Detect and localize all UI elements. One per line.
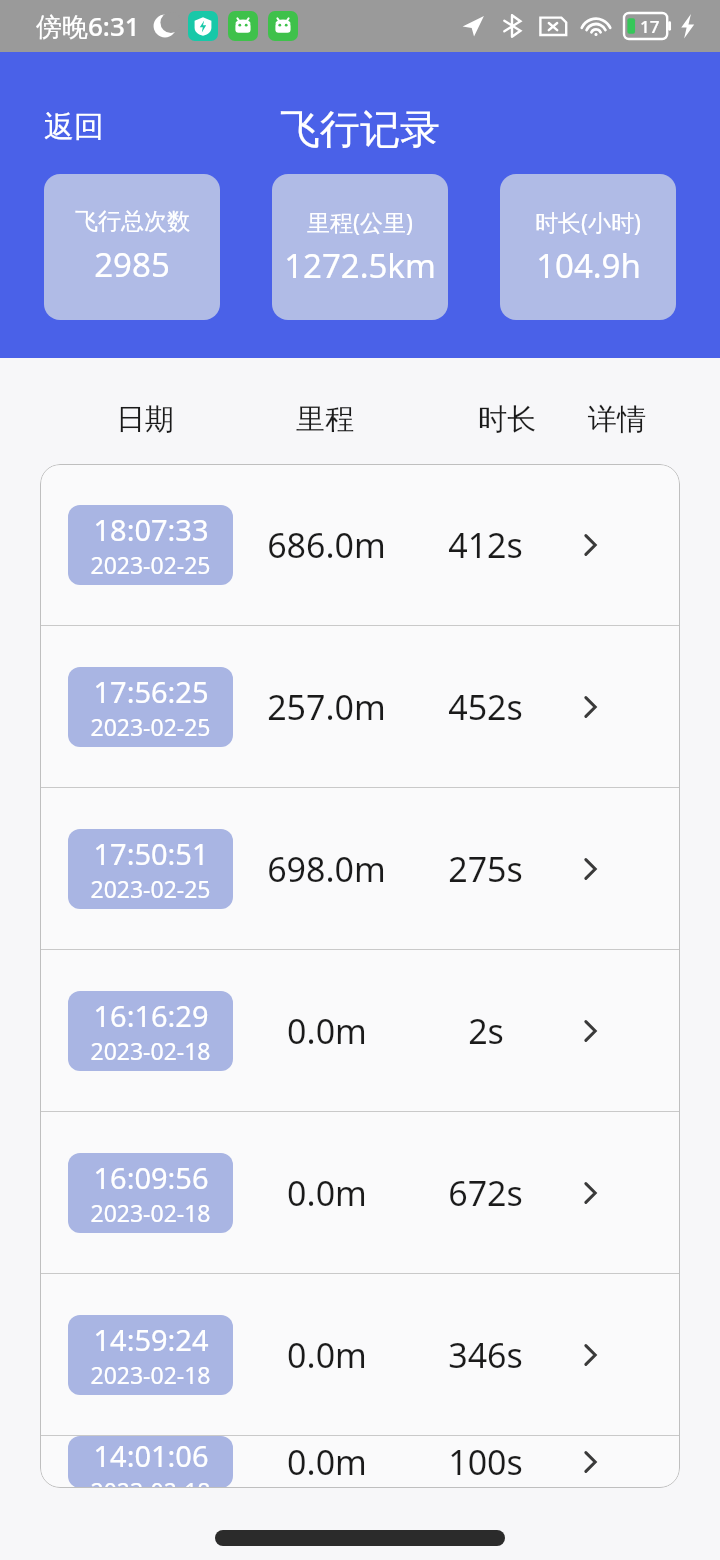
- staticText: 17:50:51: [93, 834, 209, 873]
- staticText: 2023-02-18: [90, 1197, 211, 1228]
- staticText: 0.0m: [287, 1170, 367, 1216]
- button[interactable]: 详情: [551, 1436, 629, 1488]
- staticText: 275s: [448, 846, 523, 892]
- staticText: 672s: [448, 1170, 523, 1216]
- staticText: 2023-02-18: [90, 1359, 211, 1390]
- staticText: 返回: [44, 108, 104, 146]
- staticText: 698.0m: [267, 846, 386, 892]
- staticText: 时长: [478, 401, 536, 438]
- staticText: 2023-02-18: [90, 1035, 211, 1066]
- button[interactable]: 16:09:56: [40, 1112, 680, 1273]
- staticText: 里程(公里): [307, 206, 413, 237]
- button[interactable]: 16:16:29: [40, 950, 680, 1111]
- button[interactable]: 17:50:51: [40, 788, 680, 949]
- staticText: 2023-02-18: [90, 1475, 211, 1488]
- staticText: 686.0m: [267, 522, 386, 568]
- staticText: 傍晚6:31: [36, 8, 140, 44]
- button[interactable]: 详情: [551, 668, 629, 746]
- staticText: 0.0m: [287, 1332, 367, 1378]
- staticText: 2023-02-25: [90, 711, 211, 742]
- button[interactable]: 详情: [551, 506, 629, 584]
- button[interactable]: 14:01:06: [40, 1436, 680, 1488]
- staticText: 0.0m: [287, 1008, 367, 1054]
- staticText: 452s: [448, 684, 523, 730]
- staticText: 14:59:24: [93, 1320, 209, 1359]
- staticText: 2s: [468, 1008, 504, 1054]
- staticText: 2023-02-25: [90, 549, 211, 580]
- button[interactable]: 详情: [551, 1316, 629, 1394]
- button[interactable]: 详情: [551, 992, 629, 1070]
- button[interactable]: 里程(公里): [272, 174, 448, 320]
- staticText: 飞行记录: [280, 104, 440, 154]
- staticText: 100s: [448, 1439, 523, 1485]
- staticText: 14:01:06: [93, 1436, 209, 1475]
- staticText: 0.0m: [287, 1439, 367, 1485]
- staticText: 1272.5km: [284, 243, 436, 288]
- staticText: 日期: [116, 401, 174, 438]
- staticText: 17:56:25: [93, 672, 209, 711]
- staticText: 17: [640, 15, 660, 38]
- staticText: 飞行总次数: [75, 207, 190, 236]
- staticText: 16:16:29: [93, 996, 209, 1035]
- button[interactable]: 详情: [551, 1154, 629, 1232]
- button[interactable]: 14:59:24: [40, 1274, 680, 1435]
- staticText: 16:09:56: [93, 1158, 209, 1197]
- staticText: 104.9h: [536, 243, 641, 288]
- staticText: 412s: [448, 522, 523, 568]
- staticText: 18:07:33: [93, 510, 209, 549]
- button[interactable]: 17:56:25: [40, 626, 680, 787]
- staticText: 2023-02-25: [90, 873, 211, 904]
- button[interactable]: 返回: [30, 100, 118, 154]
- button[interactable]: 飞行总次数: [44, 174, 220, 320]
- staticText: 346s: [448, 1332, 523, 1378]
- staticText: 时长(小时): [535, 206, 641, 237]
- staticText: 里程: [296, 401, 354, 438]
- button[interactable]: 时长(小时): [500, 174, 676, 320]
- staticText: 2985: [94, 242, 170, 287]
- staticText: 257.0m: [267, 684, 386, 730]
- button[interactable]: 18:07:33: [40, 464, 680, 625]
- button[interactable]: 详情: [551, 830, 629, 908]
- staticText: 详情: [588, 401, 646, 438]
